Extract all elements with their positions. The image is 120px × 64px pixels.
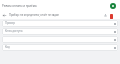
button[interactable]: Options <box>2 36 118 43</box>
staticText: Пример <box>5 21 16 25</box>
staticText: Ключ доступа <box>5 29 23 33</box>
button[interactable]: Back <box>2 13 7 18</box>
button[interactable]: Ключ доступа <box>2 28 118 35</box>
button[interactable]: Share <box>103 13 108 18</box>
staticText: Прибор: не определено; отчёт не задан <box>9 13 103 17</box>
button[interactable]: Delete <box>110 14 113 19</box>
button[interactable]: Код <box>2 44 118 51</box>
staticText: Код <box>5 45 10 49</box>
button[interactable]: Пример <box>2 20 118 27</box>
button[interactable]: Account <box>110 3 116 9</box>
staticText: Режим оплаты и приёма <box>2 4 110 8</box>
